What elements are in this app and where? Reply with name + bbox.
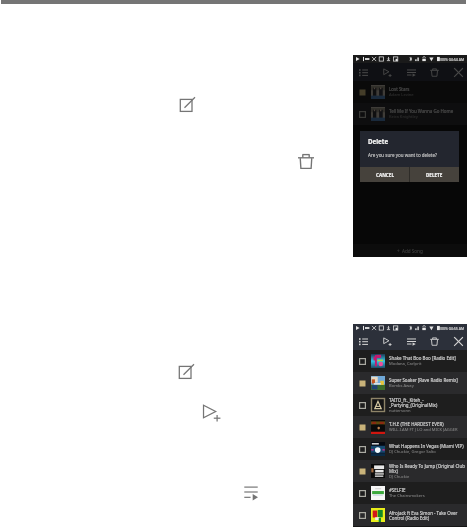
- button[interactable]: Add Song: [353, 244, 467, 257]
- button[interactable]: Who Is Ready To Jump (Original Club Mix): [353, 460, 467, 482]
- button[interactable]: What Happens In Vegas (Miami VIP): [353, 438, 467, 460]
- button[interactable]: Delete: [427, 65, 442, 80]
- staticText: CANCEL: [376, 172, 394, 178]
- staticText: Lost Stars: [389, 86, 410, 92]
- staticText: Adam Levine: [389, 92, 414, 98]
- staticText: DJ Chuckie: [389, 474, 410, 480]
- button[interactable]: Delete: [427, 334, 442, 349]
- button[interactable]: Play next: [380, 334, 395, 349]
- button[interactable]: Select all: [356, 334, 371, 349]
- button[interactable]: TAITO_ft._Kiteh_-_Partying_(OriginalMix): [353, 394, 467, 416]
- staticText: T.H.E (THE HARDEST EVER): [389, 421, 444, 427]
- button[interactable]: #SELFIE: [353, 482, 467, 504]
- staticText: Modana, Carlprit: [389, 361, 422, 367]
- button[interactable]: Play next: [202, 403, 221, 422]
- staticText: #SELFIE: [389, 487, 406, 493]
- staticText: Delete: [368, 137, 389, 145]
- button[interactable]: Super Soaker [Rave Radio Remix]: [353, 372, 467, 394]
- staticText: Tell Me If You Wanna Go Home: [389, 108, 454, 114]
- staticText: DELETE: [426, 172, 443, 178]
- button[interactable]: Tell Me If You Wanna Go Home: [353, 103, 467, 125]
- button[interactable]: Play next: [380, 65, 395, 80]
- button[interactable]: Delete: [298, 153, 314, 169]
- staticText: TAITO_ft._Kiteh_-_Partying_(OriginalMix): [389, 397, 466, 408]
- staticText: Super Soaker [Rave Radio Remix]: [389, 377, 458, 383]
- button[interactable]: Add to playlist: [404, 65, 419, 80]
- button[interactable]: Edit playlist: [179, 364, 194, 379]
- staticText: 100% 04:55 AM: [439, 326, 465, 331]
- staticText: Shake That Boo Boo [Radio Edit]: [389, 355, 456, 361]
- staticText: Afrojack ft Eva Simon - Take Over Contro…: [389, 510, 466, 521]
- staticText: The Chainsmokers: [389, 493, 425, 499]
- button[interactable]: Close: [451, 65, 466, 80]
- staticText: DJ Chuckie, Gregor Salto: [389, 449, 436, 455]
- staticText: Bombs Away: [389, 383, 414, 389]
- button[interactable]: DELETE: [410, 167, 459, 182]
- staticText: Who Is Ready To Jump (Original Club Mix): [389, 463, 466, 474]
- button[interactable]: Add to playlist: [244, 485, 258, 499]
- button[interactable]: Select all: [356, 65, 371, 80]
- button[interactable]: CANCEL: [360, 167, 409, 182]
- staticText: Are you sure you want to delete?: [368, 152, 437, 158]
- staticText: 100% 04:54 AM: [439, 57, 465, 62]
- button[interactable]: Shake That Boo Boo [Radio Edit]: [353, 350, 467, 372]
- staticText: WILL.I.AM FT J LO and MICK JAGGER: [389, 427, 458, 433]
- staticText: nuttersonn: [389, 408, 411, 414]
- staticText: + Add Song: [397, 248, 423, 254]
- button[interactable]: Close: [451, 334, 466, 349]
- button[interactable]: T.H.E (THE HARDEST EVER): [353, 416, 467, 438]
- button[interactable]: Lost Stars: [353, 81, 467, 103]
- staticText: What Happens In Vegas (Miami VIP): [389, 443, 464, 449]
- staticText: Keira Knightley: [389, 114, 418, 120]
- button[interactable]: Edit playlist: [180, 97, 195, 112]
- button[interactable]: Afrojack ft Eva Simon - Take Over Contro…: [353, 504, 467, 526]
- button[interactable]: Add to playlist: [404, 334, 419, 349]
